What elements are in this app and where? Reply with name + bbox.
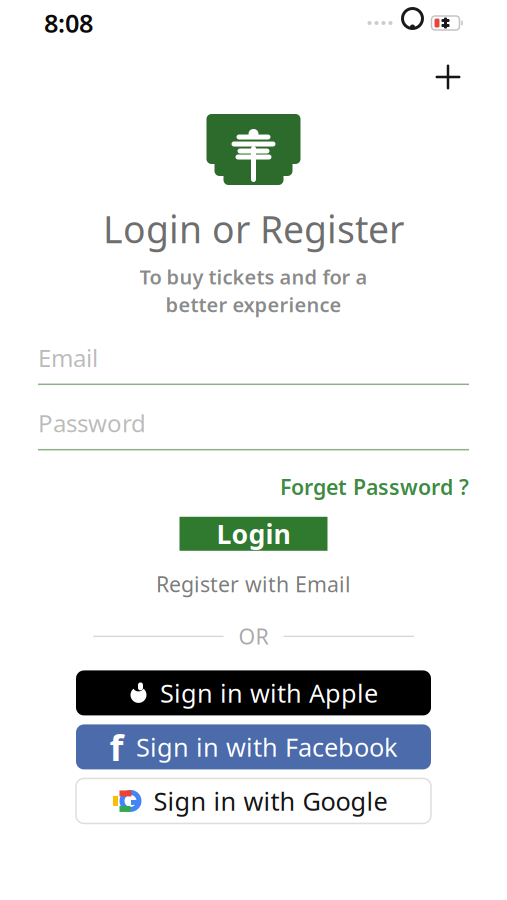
button[interactable]: Login [179, 517, 327, 551]
button[interactable]: Sign in with Google [76, 778, 431, 823]
staticText: Email [38, 342, 98, 374]
button[interactable]: Sign in with Apple [76, 670, 431, 715]
staticText: Sign in with Apple [160, 676, 378, 710]
staticText: Register with Email [156, 570, 351, 598]
staticText: f [109, 723, 123, 771]
button[interactable]: Forget Password ? [280, 472, 469, 501]
staticText: Sign in with Facebook [136, 730, 398, 764]
button[interactable]: f [76, 724, 431, 769]
staticText: OR [238, 622, 268, 650]
button[interactable]: Register with Email [156, 570, 351, 598]
staticText: better experience [165, 291, 341, 318]
staticText: To buy tickets and for a [139, 264, 367, 290]
staticText: Password [38, 407, 146, 439]
staticText: 8:08 [44, 6, 93, 40]
staticText: Login [216, 516, 290, 551]
staticText: Login or Register [103, 204, 404, 254]
staticText: Forget Password ? [280, 472, 469, 501]
button[interactable]: Close [427, 56, 469, 98]
staticText: Sign in with Google [153, 784, 387, 818]
